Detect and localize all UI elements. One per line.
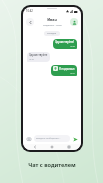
button[interactable]: Здравствуйте [27, 52, 50, 62]
staticText: Здравствуйте! [55, 40, 75, 44]
button[interactable]: Profile [70, 18, 78, 26]
staticText: 10:40 [29, 58, 34, 61]
staticText: 10:42 [26, 9, 33, 13]
staticText: 10:41 [70, 72, 75, 75]
button[interactable]: Введите сообщение… [34, 135, 70, 142]
button[interactable]: Recents [67, 145, 71, 149]
staticText: Здравствуйте [29, 53, 48, 57]
staticText: Иван [47, 17, 57, 22]
button[interactable]: Back [33, 145, 37, 149]
button[interactable]: Back [26, 18, 34, 26]
button[interactable]: Home [50, 145, 54, 149]
staticText: Чат с водителем [21, 161, 83, 169]
staticText: 10:40 [70, 45, 75, 48]
staticText: Водитель · 5228 [43, 23, 62, 26]
button[interactable]: Здравствуйте! [53, 39, 77, 49]
button[interactable]: Send [72, 136, 78, 142]
button[interactable]: Я подъехал [51, 65, 77, 76]
staticText: Введите сообщение… [36, 137, 61, 140]
staticText: Я подъехал [59, 67, 75, 71]
staticText: Сегодня [47, 32, 57, 35]
button[interactable]: Attach [26, 136, 32, 142]
